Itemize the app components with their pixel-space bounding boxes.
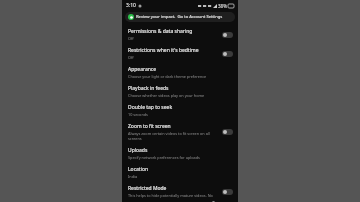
button[interactable]: Playback in feeds <box>122 82 238 101</box>
staticText: Uploads <box>128 147 148 154</box>
staticText: 38% <box>218 3 227 9</box>
staticText: Zoom to fit screen <box>128 123 171 130</box>
staticText: This helps to hide potentially mature vi… <box>128 193 218 199</box>
button[interactable]: Toggle Restricted Mode <box>221 188 234 196</box>
staticText: India <box>128 174 138 179</box>
staticText: Permissions & data sharing <box>128 28 193 35</box>
button[interactable]: Double tap to seek <box>122 101 238 120</box>
staticText: Restrictions when it's bedtime <box>128 47 199 54</box>
staticText: Choose whether videos play on your home <box>128 93 205 98</box>
button[interactable]: Permissions & data sharing <box>122 25 238 44</box>
button[interactable]: Toggle Restrictions when it's bedtime <box>221 50 234 58</box>
button[interactable]: Location <box>122 163 238 182</box>
staticText: Review your impact. Go to Account Settin… <box>136 14 223 20</box>
staticText: 10 seconds <box>128 112 148 117</box>
staticText: Specify network preferences for uploads <box>128 155 200 160</box>
button[interactable]: Uploads <box>122 144 238 163</box>
staticText: Appearance <box>128 66 157 73</box>
staticText: Always zoom certain videos to fit screen… <box>128 131 218 141</box>
staticText: Off <box>128 36 134 41</box>
button[interactable]: Review your impact. Go to Account Settin… <box>125 12 235 22</box>
staticText: Choose your light or dark theme preferen… <box>128 74 207 79</box>
staticText: Playback in feeds <box>128 85 169 92</box>
staticText: 3:10 <box>126 2 136 9</box>
button[interactable]: Appearance <box>122 63 238 82</box>
button[interactable]: Restricted Mode <box>122 182 238 202</box>
button[interactable]: Toggle Zoom to fit screen <box>221 128 234 136</box>
button[interactable]: Toggle Permissions & data sharing <box>221 31 234 39</box>
staticText: Restricted Mode <box>128 185 167 192</box>
button[interactable]: Zoom to fit screen <box>122 120 238 144</box>
button[interactable]: Restrictions when it's bedtime <box>122 44 238 63</box>
staticText: Off <box>128 55 134 60</box>
staticText: Location <box>128 166 149 173</box>
staticText: Double tap to seek <box>128 104 173 111</box>
